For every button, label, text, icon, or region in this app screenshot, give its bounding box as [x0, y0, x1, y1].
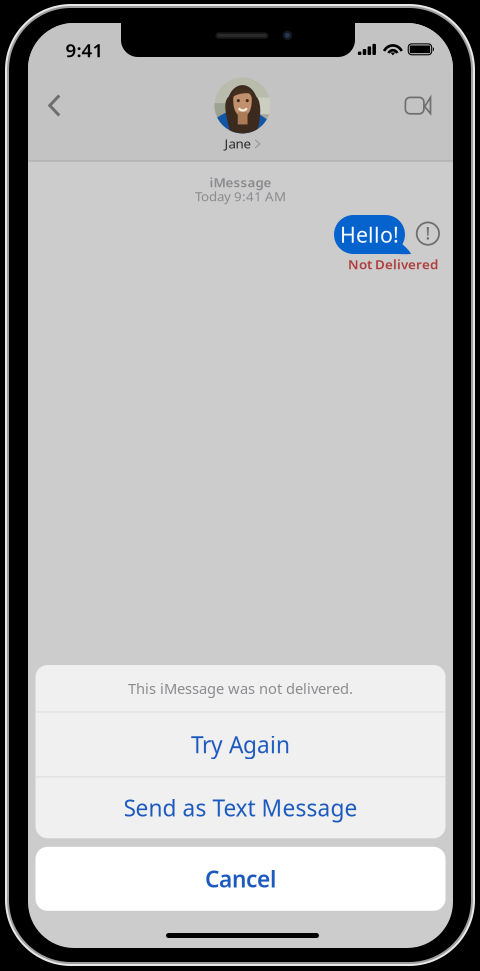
staticText: 9:41	[65, 38, 103, 62]
staticText: !	[425, 222, 430, 245]
staticText: Cancel	[205, 864, 276, 894]
button[interactable]: Send as Text Message	[35, 777, 445, 838]
staticText: This iMessage was not delivered.	[128, 678, 353, 698]
button[interactable]: Try Again	[35, 712, 445, 776]
button[interactable]: FaceTime video call	[396, 83, 440, 127]
button[interactable]: Cancel	[35, 847, 445, 911]
staticText: Hello!	[340, 220, 399, 249]
staticText: iMessage	[209, 173, 271, 191]
staticText: Jane	[225, 134, 252, 152]
staticText: Today 9:41 AM	[195, 187, 286, 205]
staticText: Send as Text Message	[123, 793, 357, 823]
staticText: Not Delivered	[348, 255, 438, 273]
button[interactable]: Jane	[177, 76, 307, 152]
staticText: Try Again	[191, 729, 290, 759]
button[interactable]: Back	[32, 83, 76, 127]
